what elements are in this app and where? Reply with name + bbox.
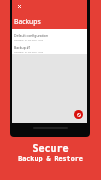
staticText: Backup & Restore (18, 155, 83, 163)
button[interactable]: Backup #1 (12, 41, 87, 53)
button[interactable]: Close (17, 4, 21, 8)
staticText: Backup #1 (14, 45, 31, 50)
staticText: Secure (32, 143, 69, 155)
button[interactable]: Default configuration (12, 29, 87, 41)
staticText: Backups (14, 17, 41, 26)
button[interactable]: Create backup (74, 110, 83, 119)
staticText: Thursday, 31 July 2021 17:05 (14, 51, 44, 53)
staticText: Thursday, 31 July 2021 17:03 (14, 39, 44, 41)
staticText: Default configuration (14, 33, 49, 38)
